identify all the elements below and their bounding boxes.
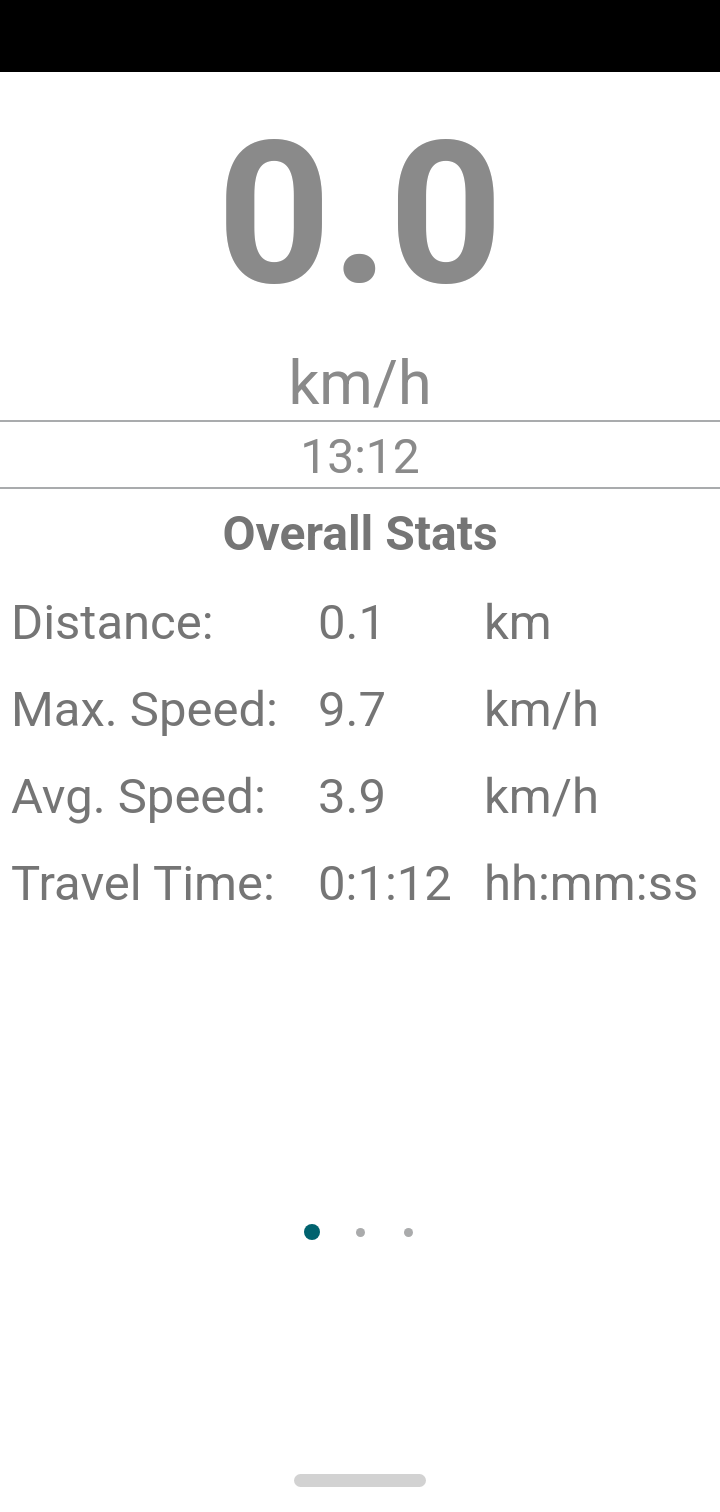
staticText: Distance: <box>11 594 214 651</box>
button[interactable]: Page 3 <box>404 1228 413 1237</box>
staticText: Travel Time: <box>11 855 275 912</box>
staticText: 0:1:12 <box>318 855 452 912</box>
staticText: Max. Speed: <box>11 681 278 738</box>
staticText: km/h <box>484 768 600 825</box>
button[interactable]: Travel Time: <box>0 840 720 927</box>
staticText: km <box>484 594 552 651</box>
staticText: km/h <box>484 681 600 738</box>
button[interactable]: Avg. Speed: <box>0 753 720 840</box>
button[interactable]: Page 1, selected <box>304 1224 320 1240</box>
staticText: Avg. Speed: <box>11 768 266 825</box>
staticText: 0.1 <box>318 594 386 651</box>
button[interactable]: 13:12 <box>0 428 720 484</box>
staticText: 3.9 <box>318 768 386 825</box>
staticText: hh:mm:ss <box>484 855 699 912</box>
staticText: km/h <box>0 347 720 418</box>
button[interactable]: 0.0 <box>0 97 720 330</box>
button[interactable]: Max. Speed: <box>0 666 720 753</box>
button[interactable]: Distance: <box>0 579 720 666</box>
button[interactable]: Page 2 <box>356 1228 365 1237</box>
staticText: Overall Stats <box>0 505 720 561</box>
staticText: 9.7 <box>318 681 386 738</box>
